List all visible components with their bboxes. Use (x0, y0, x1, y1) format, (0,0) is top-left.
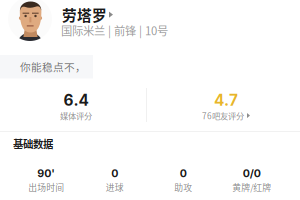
staticText: 助攻 (174, 181, 192, 194)
staticText: 黄牌/红牌 (232, 181, 271, 194)
staticText: 进球 (106, 181, 124, 194)
staticText: 劳塔罗 (62, 4, 107, 25)
staticText: 国际米兰 | 前锋 | 10号 (61, 22, 168, 38)
staticText: 90' (37, 167, 55, 180)
staticText: 4.7 (214, 91, 238, 110)
staticText: 6.4 (63, 91, 88, 110)
staticText: 76吧友评分 (202, 110, 244, 122)
staticText: 媒体评分 (60, 110, 92, 122)
staticText: 你能稳点不， (20, 59, 86, 74)
staticText: 0 (180, 167, 187, 180)
button[interactable]: 劳塔罗 (62, 4, 113, 25)
staticText: 0 (111, 167, 118, 180)
staticText: 0/0 (243, 167, 261, 180)
button[interactable]: 4.7 (151, 91, 300, 121)
staticText: 出场时间 (28, 181, 64, 194)
staticText: 基础数据 (13, 136, 53, 151)
